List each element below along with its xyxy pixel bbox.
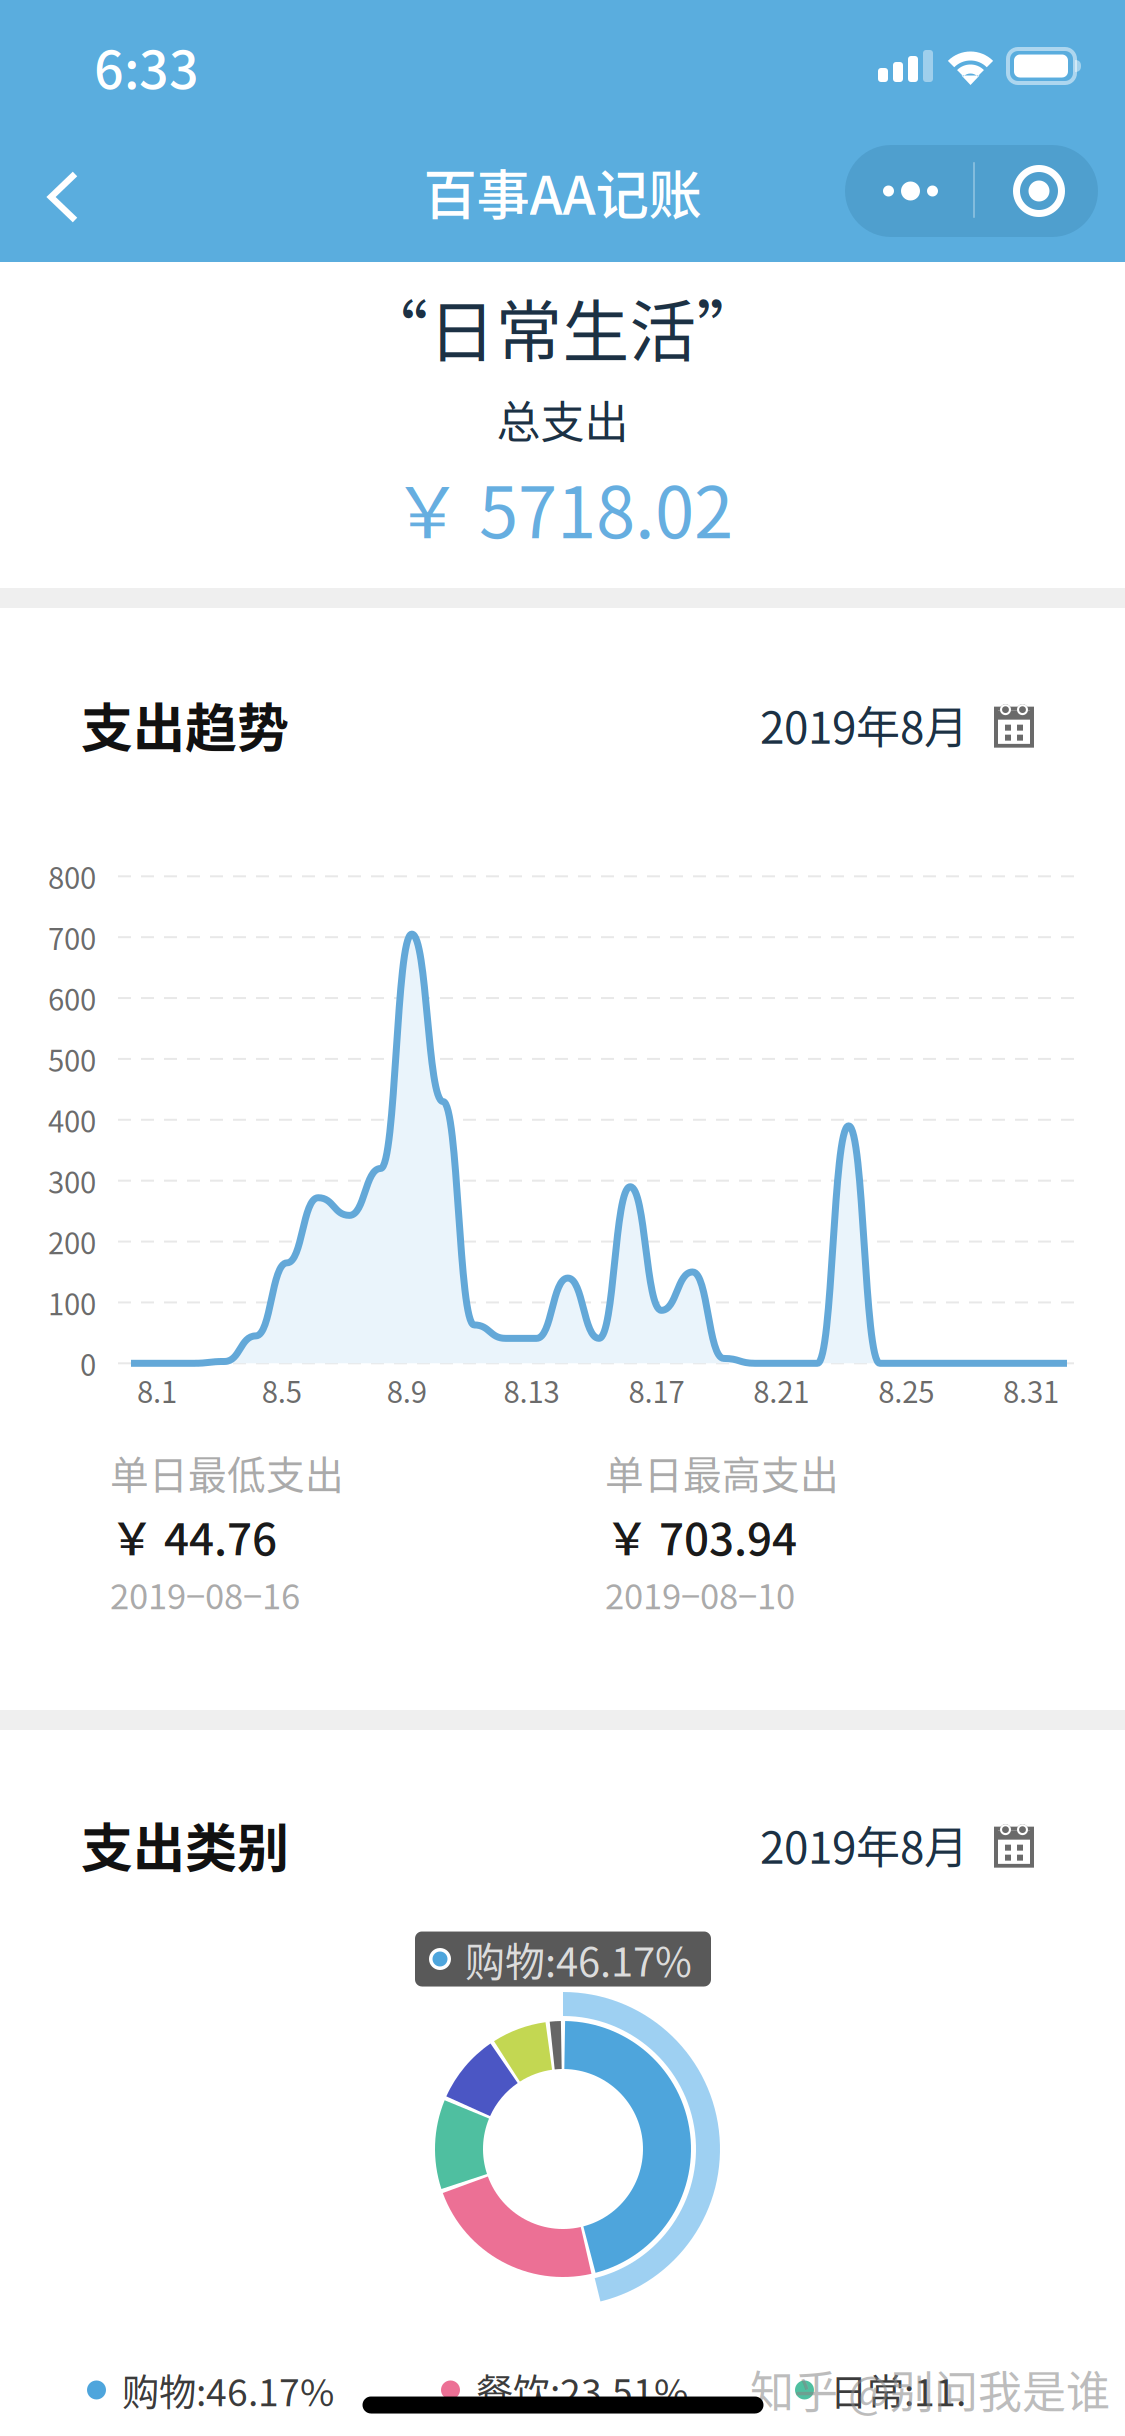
staticText: 800 — [48, 855, 96, 898]
button[interactable]: 2019年8月 — [760, 693, 1034, 756]
staticText: ￥ 44.76 — [110, 1504, 277, 1568]
staticText: 2019年8月 — [760, 1813, 968, 1876]
staticText: 300 — [48, 1159, 96, 1202]
button[interactable]: More options and close mini program — [845, 145, 1098, 237]
staticText: ￥ 5718.02 — [392, 456, 733, 558]
staticText: 8.21 — [753, 1369, 809, 1412]
staticText: 日常:11. — [830, 2363, 966, 2417]
staticText: 单日最高支出 — [605, 1444, 839, 1500]
staticText: 700 — [48, 916, 96, 958]
staticText: 500 — [48, 1038, 96, 1080]
staticText: 0 — [80, 1342, 96, 1385]
button[interactable]: 2019年8月 — [760, 1813, 1034, 1876]
staticText: ￥ 703.94 — [605, 1504, 797, 1568]
staticText: 8.5 — [262, 1369, 302, 1412]
staticText: 8.25 — [878, 1369, 934, 1412]
staticText: 400 — [48, 1099, 96, 1141]
staticText: 总支出 — [496, 387, 628, 451]
staticText: 购物:46.17% — [465, 1930, 692, 1988]
button[interactable]: Back — [0, 132, 118, 262]
staticText: 2019−08−10 — [605, 1569, 795, 1619]
staticText: 餐饮:23.51% — [476, 2363, 688, 2417]
staticText: 100 — [48, 1281, 96, 1324]
staticText: 百事AA记账 — [423, 153, 701, 230]
staticText: 8.13 — [504, 1369, 560, 1412]
staticText: 8.17 — [628, 1369, 684, 1412]
staticText: 购物:46.17% — [122, 2363, 334, 2417]
staticText: “日常生活” — [361, 279, 763, 375]
staticText: 2019年8月 — [760, 693, 968, 756]
staticText: 200 — [48, 1220, 96, 1263]
staticText: 支出趋势 — [81, 687, 289, 762]
staticText: 8.31 — [1003, 1369, 1059, 1412]
staticText: 知乎 @别问我是谁 — [750, 2357, 1110, 2421]
staticText: 单日最低支出 — [110, 1444, 344, 1500]
staticText: 600 — [48, 977, 96, 1019]
staticText: 8.9 — [387, 1369, 427, 1412]
staticText: 2019−08−16 — [110, 1569, 300, 1619]
staticText: 8.1 — [137, 1369, 177, 1412]
staticText: 6:33 — [94, 28, 199, 104]
staticText: 支出类别 — [81, 1807, 289, 1882]
